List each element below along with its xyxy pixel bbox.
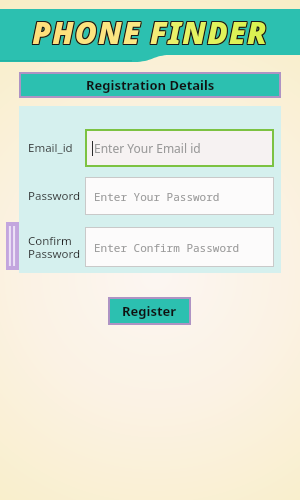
staticText: PHONE FINDER [32,13,268,54]
staticText: PHONE FINDER [33,11,269,52]
button[interactable]: Enter Your Email id [87,131,272,165]
staticText: PHONE FINDER [33,13,269,54]
staticText: PHONE FINDER [33,12,269,53]
staticText: PHONE FINDER [32,11,268,52]
staticText: PHONE FINDER [31,11,267,52]
staticText: PHONE FINDER [31,12,267,53]
staticText: PHONE FINDER [32,13,268,54]
staticText: Password [28,188,81,204]
staticText: PHONE FINDER [31,13,267,54]
staticText: PHONE FINDER [33,12,269,53]
button[interactable]: Register [110,299,189,323]
staticText: PHONE FINDER [32,12,268,53]
staticText: PHONE FINDER [33,13,269,54]
button[interactable]: Enter Confirm Password [86,228,273,266]
staticText: Enter Confirm Password [94,240,240,255]
other: Scroll indicator [6,222,19,270]
staticText: Enter Your Password [94,189,220,204]
staticText: Enter Your Email id [94,140,201,156]
staticText: PHONE FINDER [31,11,267,52]
staticText: Register [122,302,177,320]
staticText: PHONE FINDER [31,13,267,54]
staticText: PHONE FINDER [32,11,268,52]
staticText: PHONE FINDER [33,11,269,52]
staticText: Confirm Password [28,233,81,262]
button[interactable]: Enter Your Password [86,178,273,214]
staticText: PHONE FINDER [31,12,267,53]
staticText: Registration Details [86,76,215,94]
staticText: Email_id [28,140,73,156]
button[interactable]: Registration Details [21,74,279,96]
